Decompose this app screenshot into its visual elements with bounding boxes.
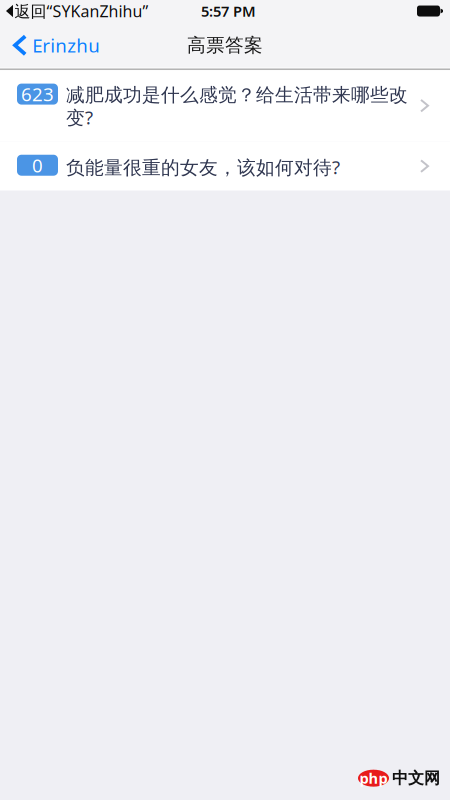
staticText: 0	[32, 153, 43, 178]
staticText: 中文网	[392, 768, 440, 788]
staticText: 负能量很重的女友，该如何对待?	[66, 155, 340, 179]
staticText: php	[359, 768, 387, 788]
staticText: 623	[21, 82, 54, 106]
staticText: Erinzhu	[32, 33, 100, 58]
button[interactable]: Erinzhu	[0, 22, 110, 68]
staticText: 返回“SYKanZhihu”	[14, 0, 148, 22]
staticText: 5:57 PM	[201, 1, 256, 21]
staticText: 减肥成功是什么感觉？给生活带来哪些改变?	[66, 84, 408, 130]
button[interactable]: 623	[0, 70, 450, 142]
staticText: 高票答案	[187, 34, 263, 57]
button[interactable]: 0	[0, 142, 450, 190]
